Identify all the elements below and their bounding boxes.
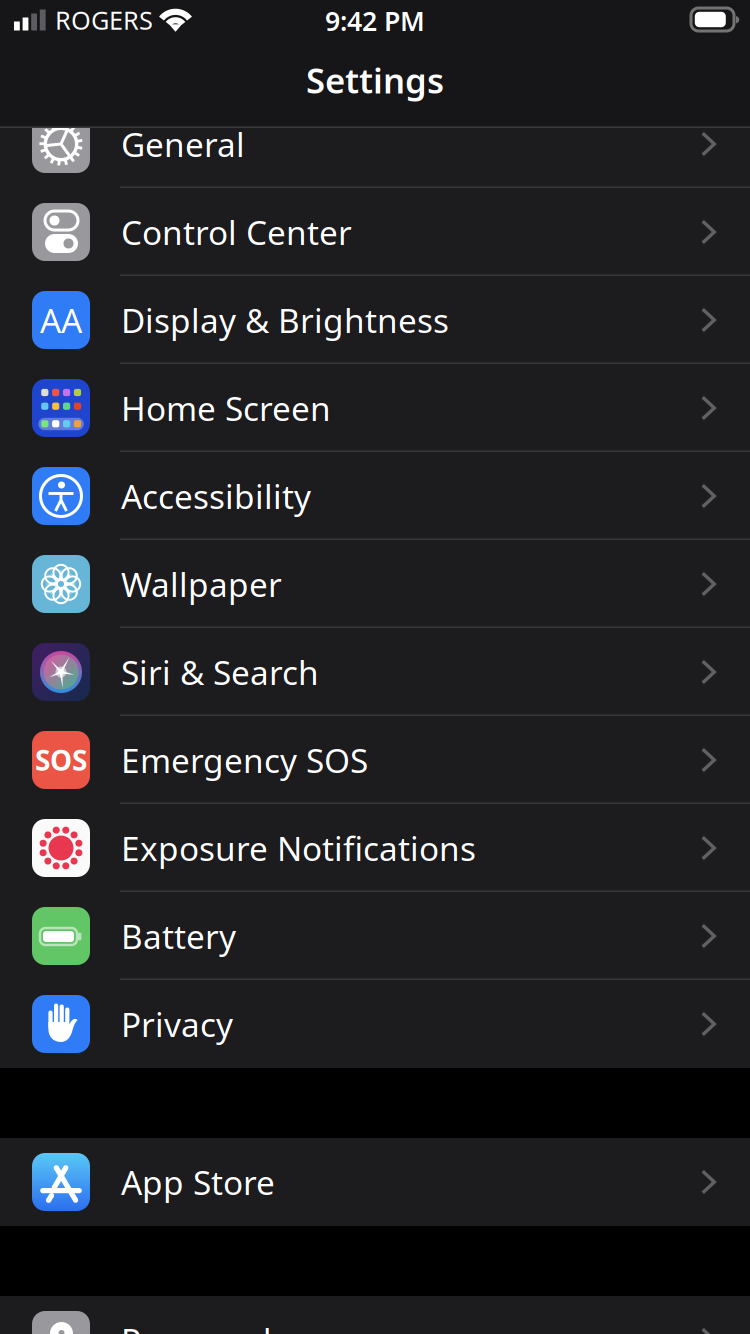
button[interactable]: Siri & Search: [0, 628, 750, 716]
button[interactable]: Control Center: [0, 188, 750, 276]
staticText: Control Center: [121, 210, 352, 254]
staticText: Battery: [121, 914, 236, 958]
staticText: ROGERS: [55, 3, 153, 35]
button[interactable]: General: [0, 100, 750, 188]
button[interactable]: Accessibility: [0, 452, 750, 540]
button[interactable]: Home Screen: [0, 364, 750, 452]
staticText: Passwords: [121, 1318, 288, 1334]
staticText: App Store: [121, 1160, 275, 1204]
staticText: AA: [40, 298, 82, 342]
staticText: Wallpaper: [121, 562, 282, 606]
button[interactable]: Passwords: [0, 1296, 750, 1334]
staticText: SOS: [35, 741, 87, 779]
staticText: Exposure Notifications: [121, 826, 476, 870]
staticText: Home Screen: [121, 386, 331, 430]
button[interactable]: Battery: [0, 892, 750, 980]
staticText: Emergency SOS: [121, 738, 368, 782]
staticText: Display & Brightness: [121, 298, 449, 342]
staticText: Siri & Search: [121, 650, 319, 694]
staticText: General: [121, 122, 245, 166]
staticText: Settings: [306, 57, 444, 103]
button[interactable]: SOS: [0, 716, 750, 804]
staticText: 9:42 PM: [325, 3, 425, 35]
button[interactable]: Exposure Notifications: [0, 804, 750, 892]
staticText: Accessibility: [121, 474, 311, 518]
staticText: Privacy: [121, 1002, 233, 1046]
button[interactable]: AA: [0, 276, 750, 364]
button[interactable]: Privacy: [0, 980, 750, 1068]
button[interactable]: Wallpaper: [0, 540, 750, 628]
button[interactable]: App Store: [0, 1138, 750, 1226]
